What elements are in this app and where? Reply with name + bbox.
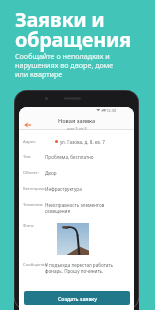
staticText: Объект:	[23, 170, 39, 176]
staticText: Сообщайте о неполадках и нарушениях во д…	[15, 51, 114, 79]
button[interactable]: Создать заявку	[24, 291, 130, 305]
staticText: ул. Газова, д. 8, кв. 7	[60, 139, 105, 145]
button[interactable]: Фото заявки	[57, 223, 89, 255]
staticText: У подъезда перестал работать фонарь. Про…	[45, 262, 113, 274]
staticText: Неисправность элементов освещения	[45, 202, 105, 214]
staticText: 12:30	[106, 108, 117, 113]
staticText: Категория:	[23, 186, 46, 192]
staticText: Сообщение:	[23, 262, 48, 268]
staticText: шаг 5 из 5	[67, 126, 87, 131]
staticText: Инфраструктура	[45, 186, 82, 192]
staticText: Заявки и обращения	[15, 6, 131, 53]
staticText: Адрес:	[23, 139, 37, 145]
button[interactable]: Назад	[21, 118, 34, 131]
staticText: Двор	[45, 170, 57, 176]
staticText: Тип:	[23, 154, 32, 160]
staticText: Создать заявку	[58, 295, 97, 302]
staticText: Фото:	[23, 223, 35, 229]
staticText: Тематика:	[23, 202, 44, 208]
staticText: Проблема, бесплатно	[45, 154, 94, 160]
staticText: Новая заявка	[58, 117, 96, 125]
